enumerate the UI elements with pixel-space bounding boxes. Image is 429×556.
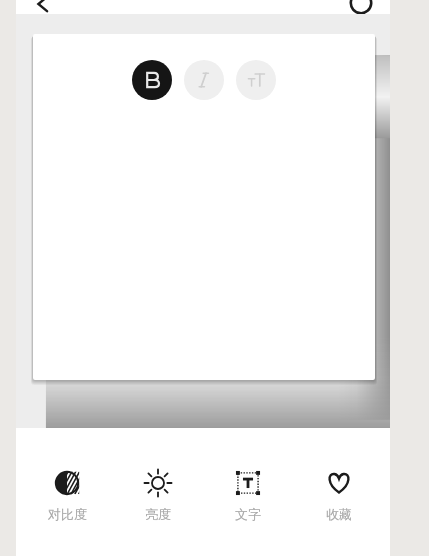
button[interactable]: 对比度 bbox=[27, 464, 107, 524]
button[interactable]: Bold bbox=[132, 60, 172, 100]
staticText: 亮度 bbox=[145, 506, 171, 522]
button[interactable]: Back bbox=[24, 0, 60, 22]
button[interactable]: 亮度 bbox=[118, 464, 198, 524]
staticText: 收藏 bbox=[326, 506, 352, 522]
button[interactable]: 文字 bbox=[208, 464, 288, 524]
staticText: 对比度 bbox=[48, 506, 87, 522]
button[interactable]: Text size bbox=[236, 60, 276, 100]
staticText: 文字 bbox=[235, 506, 261, 522]
button[interactable]: 收藏 bbox=[299, 464, 379, 524]
button[interactable]: Refresh bbox=[344, 0, 378, 20]
button[interactable]: Italic bbox=[184, 60, 224, 100]
